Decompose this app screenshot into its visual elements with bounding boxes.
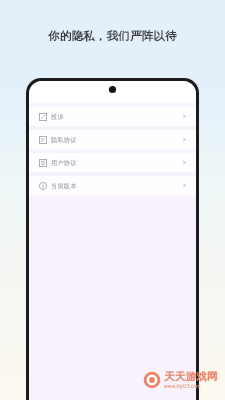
staticText: 当前版本	[51, 182, 77, 190]
button[interactable]: 天天游戏网	[140, 367, 221, 392]
other: icon	[39, 159, 47, 167]
other: icon	[39, 136, 47, 144]
staticText: 天天游戏网	[164, 370, 218, 383]
staticText: 隐私协议	[51, 136, 77, 144]
staticText: 你的隐私，我们严阵以待	[48, 29, 177, 43]
button[interactable]: icon	[29, 130, 196, 149]
staticText: 投诉	[51, 113, 64, 121]
other: icon	[39, 182, 47, 190]
staticText: 用户协议	[51, 159, 77, 167]
button[interactable]: icon	[29, 176, 196, 195]
button[interactable]: icon	[29, 107, 196, 126]
staticText: www.ttyl23.com	[164, 383, 201, 389]
other: icon	[39, 113, 47, 121]
button[interactable]: icon	[29, 153, 196, 172]
